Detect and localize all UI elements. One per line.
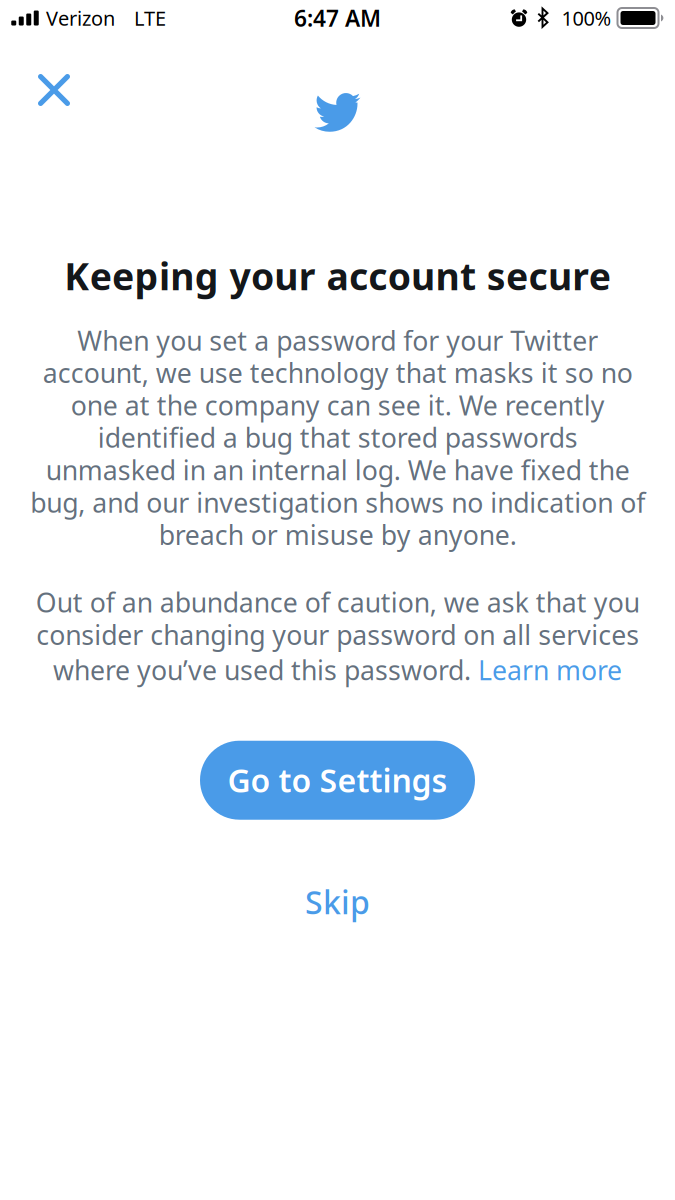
staticText: Verizon bbox=[46, 5, 115, 31]
staticText: where you’ve used this password. bbox=[53, 652, 478, 688]
staticText: Keeping your account secure bbox=[64, 251, 611, 301]
button[interactable]: Close bbox=[24, 60, 84, 120]
button[interactable]: Learn more bbox=[478, 652, 622, 688]
button[interactable]: Go to Settings bbox=[200, 741, 475, 820]
staticText: 6:47 AM bbox=[294, 3, 381, 33]
button[interactable]: Skip bbox=[275, 871, 400, 933]
staticText: Learn more bbox=[478, 652, 622, 688]
staticText: LTE bbox=[134, 5, 166, 31]
staticText: Out of an abundance of caution, we ask t… bbox=[35, 584, 639, 652]
staticText: Skip bbox=[305, 881, 370, 923]
staticText: When you set a password for your Twitter… bbox=[30, 323, 645, 552]
staticText: Go to Settings bbox=[227, 759, 447, 801]
staticText: 100% bbox=[561, 5, 611, 31]
